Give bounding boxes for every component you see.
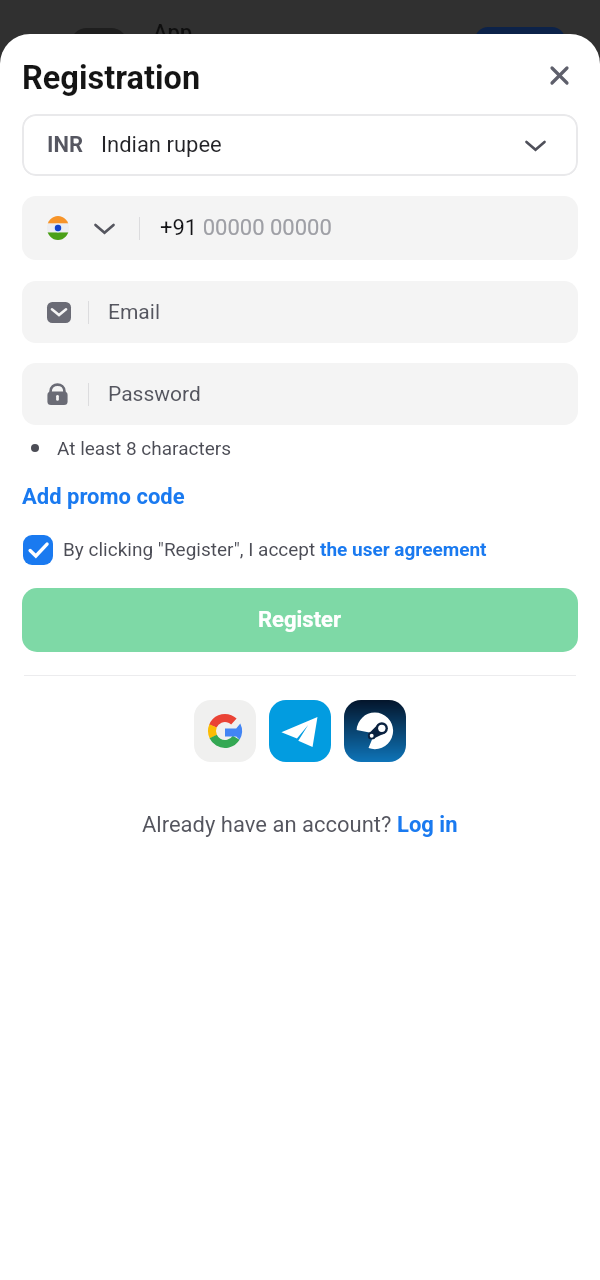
staticText: Register: [258, 607, 342, 633]
staticText: Indian rupee: [101, 132, 222, 158]
button[interactable]: Log in: [397, 812, 458, 838]
staticText: Registration: [22, 59, 201, 97]
button[interactable]: Sign in with Steam: [344, 700, 406, 762]
button[interactable]: +91 00000 00000: [22, 196, 578, 260]
staticText: At least 8 characters: [57, 437, 231, 459]
staticText: Email: [108, 300, 160, 325]
button[interactable]: Register: [22, 588, 578, 652]
button[interactable]: Sign in with Telegram: [269, 700, 331, 762]
button[interactable]: Add promo code: [22, 484, 185, 510]
staticText: Already have an account?: [142, 812, 397, 838]
button[interactable]: INR: [22, 114, 578, 176]
staticText: Log in: [397, 812, 458, 838]
button[interactable]: Email: [22, 281, 578, 343]
staticText: Password: [108, 382, 201, 407]
staticText: +91 00000 00000: [160, 215, 332, 241]
staticText: By clicking "Register", I accept the use…: [63, 538, 487, 560]
button[interactable]: Password: [22, 363, 578, 425]
button[interactable]: Close: [541, 57, 577, 93]
button[interactable]: Accept the user agreement: [23, 535, 53, 565]
staticText: App: [153, 20, 193, 46]
staticText: Add promo code: [22, 484, 185, 510]
staticText: INR: [47, 132, 84, 158]
button[interactable]: Sign in with Google: [194, 700, 256, 762]
